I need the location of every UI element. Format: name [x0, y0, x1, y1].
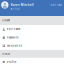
staticText: Crop [13, 7, 20, 10]
staticText: Edit name [7, 27, 21, 31]
button[interactable]: Edit info [50, 3, 62, 6]
staticText: Profile [7, 60, 17, 64]
staticText: Password [7, 36, 19, 39]
staticText: My devices [7, 44, 22, 47]
button[interactable]: Edit name [0, 25, 64, 33]
staticText: Karen Mitchell [11, 3, 34, 7]
staticText: Account [2, 19, 10, 22]
button[interactable]: Profile [0, 58, 64, 66]
button[interactable]: My devices [0, 42, 64, 50]
staticText: Global [2, 52, 10, 55]
button[interactable]: Password [0, 33, 64, 42]
staticText: Edit info [50, 3, 62, 6]
